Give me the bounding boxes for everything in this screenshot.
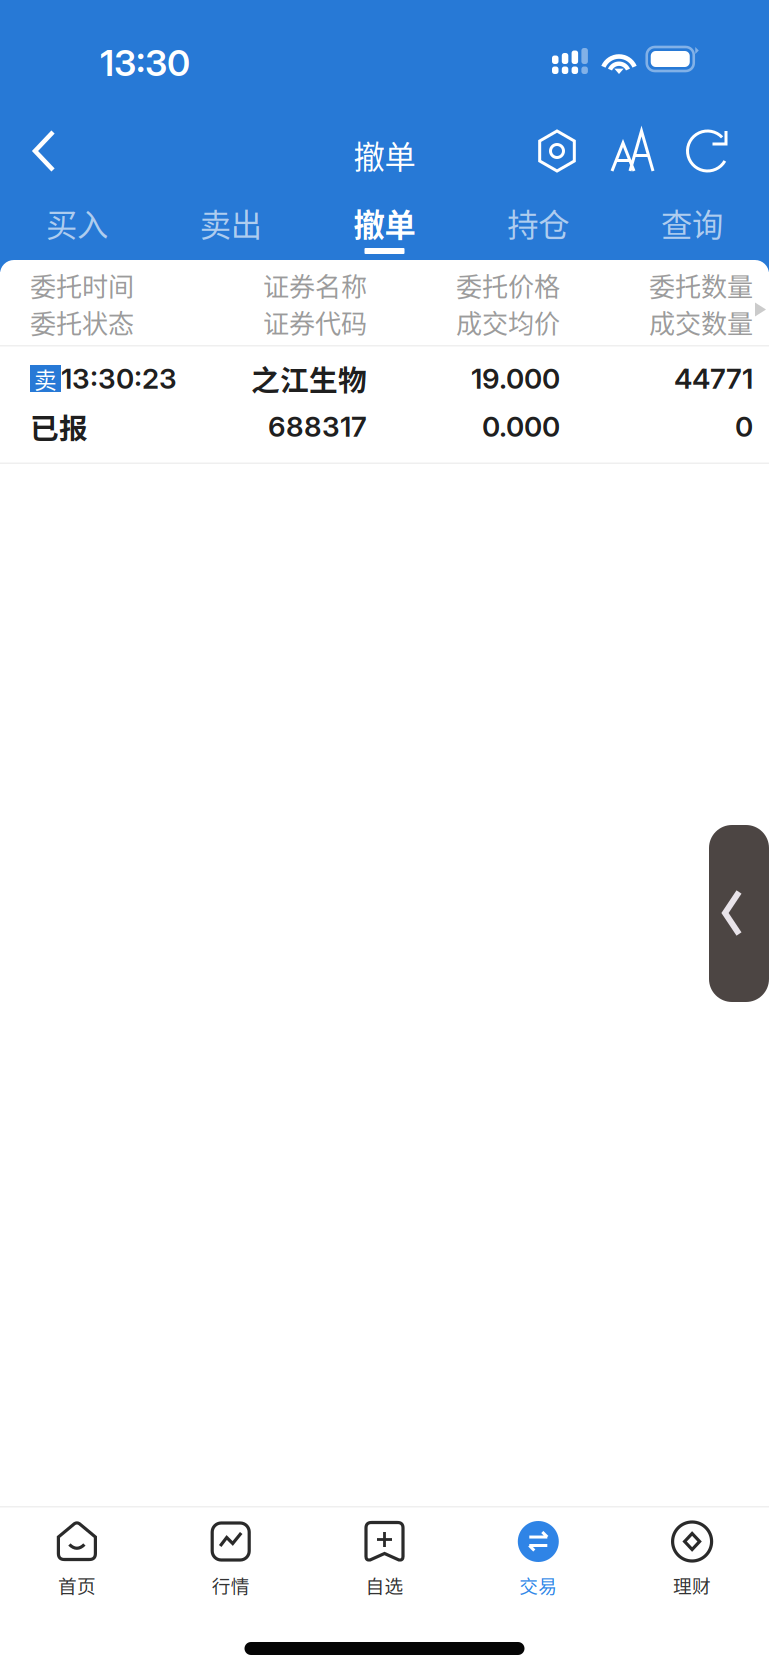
staticText: 撤单	[353, 132, 415, 178]
button[interactable]: 首页	[0, 1507, 154, 1605]
staticText: 之江生物	[251, 358, 367, 399]
staticText: 首页	[58, 1571, 96, 1598]
staticText: 44771	[674, 362, 753, 395]
staticText: 自选	[365, 1571, 403, 1598]
button[interactable]: 买入	[0, 200, 154, 272]
staticText: 成交均价	[456, 303, 560, 341]
button[interactable]: 自选	[308, 1507, 461, 1605]
staticText: 13:30:23	[61, 362, 177, 395]
staticText: 卖出	[200, 200, 262, 246]
staticText: 委托数量	[649, 266, 753, 304]
button[interactable]: 卖出	[154, 200, 308, 272]
button[interactable]: 行情	[154, 1507, 308, 1605]
button[interactable]: 交易	[461, 1507, 615, 1605]
staticText: 委托状态	[30, 303, 134, 341]
staticText: 13:30	[100, 41, 190, 85]
button[interactable]: 理财	[615, 1507, 769, 1605]
staticText: 19.000	[471, 362, 560, 395]
button[interactable]: Expand side panel	[709, 825, 769, 1002]
staticText: 买入	[46, 200, 108, 246]
button[interactable]: Text size	[603, 122, 662, 180]
staticText: 已报	[30, 406, 88, 447]
button[interactable]: Settings	[531, 120, 583, 181]
staticText: 理财	[673, 1571, 711, 1598]
staticText: 委托价格	[456, 266, 560, 304]
button[interactable]: Refresh	[678, 120, 737, 181]
button[interactable]: Back	[15, 121, 73, 181]
button[interactable]: 撤单	[308, 200, 461, 272]
staticText: 查询	[661, 200, 723, 246]
staticText: 证券代码	[263, 303, 367, 341]
button[interactable]: 持仓	[461, 200, 615, 272]
staticText: 成交数量	[649, 303, 753, 341]
staticText: 证券名称	[263, 266, 367, 304]
button[interactable]: 卖	[0, 346, 769, 462]
staticText: 688317	[268, 410, 367, 443]
staticText: 0.000	[482, 410, 560, 443]
staticText: 行情	[212, 1571, 250, 1598]
button[interactable]: 查询	[615, 200, 769, 272]
staticText: 卖	[34, 362, 57, 395]
staticText: 委托时间	[30, 266, 134, 304]
staticText: 交易	[519, 1571, 557, 1598]
staticText: 撤单	[353, 200, 415, 246]
staticText: 持仓	[507, 200, 569, 246]
staticText: 0	[735, 410, 753, 443]
